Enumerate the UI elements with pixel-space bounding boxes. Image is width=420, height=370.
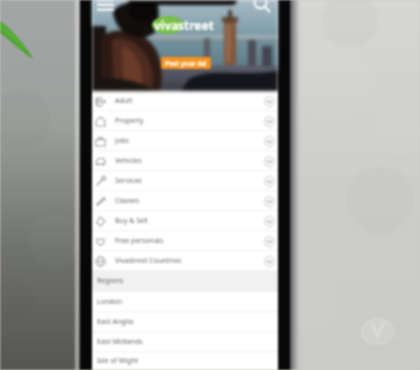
- staticText: Property: [115, 116, 144, 126]
- button[interactable]: Search: [251, 0, 273, 15]
- staticText: Buy & Sell: [115, 216, 148, 226]
- button[interactable]: East Midlands: [92, 332, 278, 352]
- staticText: Jobs: [115, 136, 129, 146]
- staticText: Classes: [115, 196, 140, 206]
- staticText: Services: [115, 176, 142, 186]
- button[interactable]: Post your Ad: [161, 57, 211, 69]
- button[interactable]: Vehicles: [92, 151, 278, 171]
- staticText: street: [178, 17, 214, 33]
- staticText: Vivastreet Countries: [115, 256, 182, 266]
- button[interactable]: Jobs: [92, 131, 278, 151]
- staticText: Isle of Wight: [97, 356, 139, 366]
- staticText: East Midlands: [97, 337, 143, 347]
- staticText: London: [97, 297, 123, 307]
- button[interactable]: Vivastreet Countries: [92, 251, 278, 271]
- staticText: Vehicles: [115, 156, 142, 166]
- button[interactable]: Menu: [94, 0, 116, 16]
- button[interactable]: London: [92, 292, 278, 312]
- staticText: East Anglia: [97, 317, 134, 327]
- button[interactable]: Property: [92, 111, 278, 131]
- staticText: Regions: [97, 276, 124, 286]
- button[interactable]: Free personals: [92, 231, 278, 251]
- staticText: Post your Ad: [165, 59, 207, 68]
- staticText: viva: [154, 17, 179, 33]
- staticText: Free personals: [115, 236, 164, 246]
- staticText: Adult: [115, 96, 133, 106]
- button[interactable]: Classes: [92, 191, 278, 211]
- button[interactable]: Services: [92, 171, 278, 191]
- button[interactable]: Isle of Wight: [92, 352, 278, 370]
- button[interactable]: Adult: [92, 91, 278, 111]
- button[interactable]: Buy & Sell: [92, 211, 278, 231]
- button[interactable]: East Anglia: [92, 312, 278, 332]
